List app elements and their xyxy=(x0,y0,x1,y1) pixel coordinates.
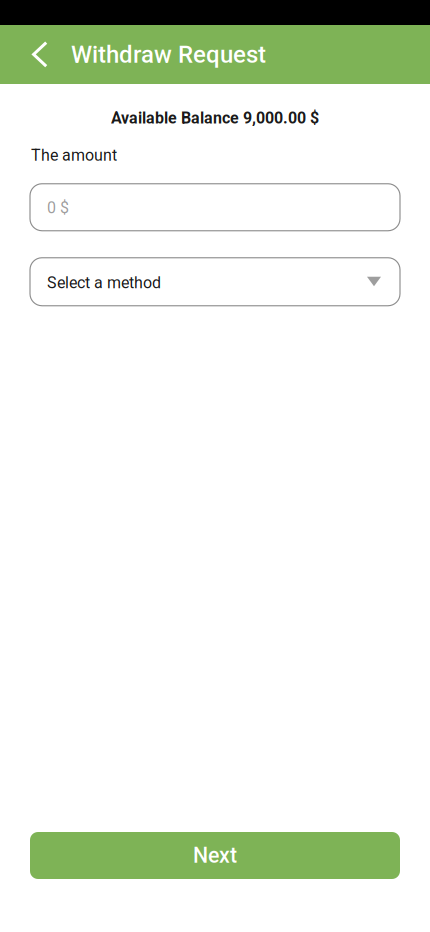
staticText: 0 $ xyxy=(47,198,69,217)
button[interactable]: Back xyxy=(0,25,64,84)
button[interactable]: Next xyxy=(0,832,400,879)
staticText: Withdraw Request xyxy=(71,40,266,68)
button[interactable]: 0 $ xyxy=(0,184,400,231)
staticText: The amount xyxy=(31,146,117,165)
staticText: Select a method xyxy=(47,273,161,292)
staticText: Available Balance 9,000.00 $ xyxy=(111,109,319,127)
button[interactable]: Select a method xyxy=(0,258,400,306)
staticText: Next xyxy=(193,843,237,868)
